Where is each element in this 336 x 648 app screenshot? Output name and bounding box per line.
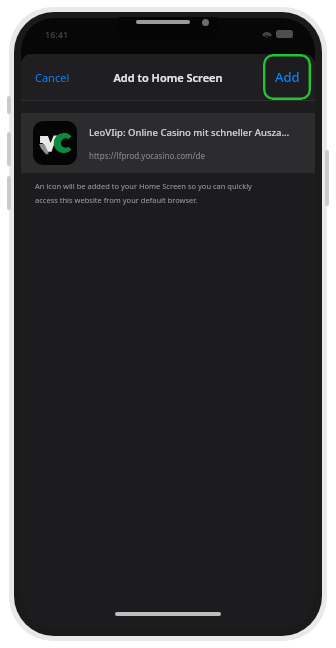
staticText: Add [275, 68, 300, 86]
staticText: https://lfprod.yocasino.com/de [89, 150, 205, 161]
staticText: 16:41 [45, 28, 69, 40]
button[interactable]: Cancel [21, 60, 84, 95]
staticText: Add to Home Screen [113, 70, 223, 85]
button[interactable]: Add [263, 54, 311, 100]
staticText: LeoVIip: Online Casino mit schneller Aus… [89, 126, 290, 139]
staticText: access this website from your default br… [35, 195, 198, 205]
button[interactable]: LeoVIip: Online Casino mit schneller Aus… [21, 113, 315, 173]
staticText: An icon will be added to your Home Scree… [35, 181, 252, 191]
